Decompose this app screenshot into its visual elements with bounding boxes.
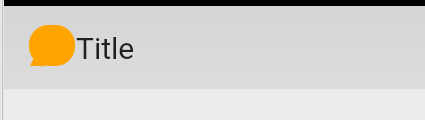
other: App icon bbox=[29, 25, 75, 66]
button[interactable]: App icon bbox=[0, 6, 425, 89]
staticText: Title bbox=[76, 31, 135, 66]
